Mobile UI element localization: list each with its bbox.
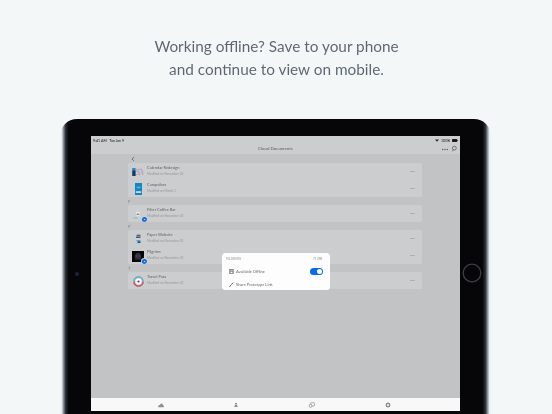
staticText: Modified on November 20	[147, 214, 184, 218]
button[interactable]: Share Prototype Link	[226, 278, 323, 290]
button[interactable]: Settings	[370, 398, 406, 411]
button[interactable]: Paper Website	[128, 230, 422, 247]
staticText: P	[128, 224, 131, 229]
button[interactable]: Cloud	[143, 398, 179, 411]
staticText: 100%	[441, 138, 451, 142]
button[interactable]: More options	[408, 184, 417, 193]
button[interactable]: Available Offline	[226, 265, 323, 278]
staticText: Modified on November 20	[147, 172, 184, 176]
staticText: T	[128, 266, 131, 271]
staticText: Campvibes	[147, 182, 167, 187]
staticText: Pilgrims	[147, 249, 161, 254]
staticText: Travel Pass	[147, 274, 167, 279]
staticText: Cloud Documents	[258, 146, 293, 151]
staticText: 9:41 AM Tue Jan 9	[93, 138, 125, 142]
button[interactable]: Calendar Redesign	[128, 163, 422, 180]
button[interactable]: More options	[408, 234, 417, 243]
staticText: Modified on March 1	[147, 189, 176, 193]
staticText: Modified on November 20	[147, 239, 184, 243]
button[interactable]: Campvibes	[128, 180, 422, 197]
staticText: Filter Coffee Bar	[147, 207, 176, 212]
button[interactable]: Filter Coffee Bar	[128, 205, 422, 222]
button[interactable]: More options	[408, 251, 417, 260]
button[interactable]: Projects	[294, 398, 330, 411]
button[interactable]: Travel Pass	[128, 272, 422, 289]
staticText: 71 MB	[313, 257, 323, 261]
staticText: Available Offline	[236, 269, 265, 274]
staticText: Share Prototype Link	[236, 282, 273, 287]
button[interactable]: More options	[408, 167, 417, 176]
button[interactable]: Profile	[218, 398, 254, 411]
staticText: Working offline? Save to your phone and …	[154, 37, 399, 78]
staticText: Calendar Redesign	[147, 165, 180, 170]
button[interactable]: Pilgrims	[128, 247, 422, 264]
staticText: Paper Website	[147, 232, 173, 237]
button[interactable]: More	[440, 144, 449, 154]
staticText: Modified on November 20	[147, 256, 184, 260]
button[interactable]: Back	[128, 154, 137, 163]
button[interactable]: More options	[408, 276, 417, 285]
staticText: Modified on November 20	[147, 281, 184, 285]
staticText: F	[128, 199, 131, 204]
button[interactable]: Search	[449, 144, 458, 154]
button[interactable]: More options	[408, 209, 417, 218]
staticText: PILGRIMS	[226, 257, 242, 261]
